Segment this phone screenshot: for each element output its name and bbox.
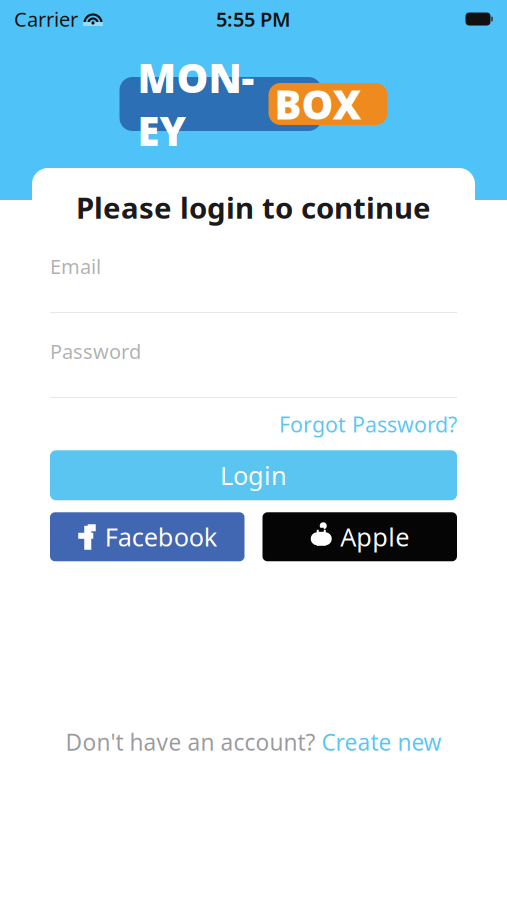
staticText: Login [220, 458, 287, 492]
staticText: Don't have an account? [65, 727, 321, 757]
staticText: Forgot Password? [279, 410, 457, 438]
staticText: Create new [321, 727, 441, 757]
staticText: Email [50, 253, 101, 280]
button[interactable]: Facebook [50, 512, 244, 561]
staticText: Carrier [14, 6, 78, 32]
button[interactable]: Apple [262, 512, 457, 561]
button[interactable]: Forgot Password? [50, 398, 457, 444]
button[interactable]: Login [50, 450, 457, 500]
staticText: Apple [340, 520, 409, 554]
staticText: Facebook [105, 520, 218, 554]
staticText: MONEY [137, 51, 254, 157]
button[interactable]: Don't have an account? [65, 727, 441, 757]
staticText: BOX [274, 77, 361, 130]
staticText: 5:55 PM [216, 6, 291, 32]
staticText: Please login to continue [76, 188, 431, 227]
staticText: Password [50, 338, 141, 365]
